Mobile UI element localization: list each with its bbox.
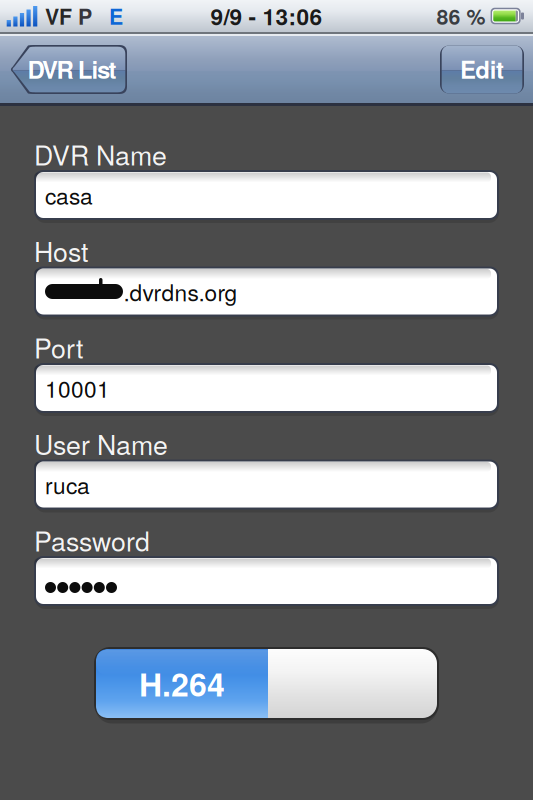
button[interactable]: DVR List	[11, 45, 127, 94]
staticText: casa	[45, 179, 93, 211]
staticText: E	[109, 1, 123, 31]
staticText: 86 %	[437, 1, 486, 31]
staticText: DVR Name	[34, 135, 167, 173]
staticText: H.264	[139, 661, 225, 706]
staticText: VF	[45, 1, 72, 31]
staticText: 9/9 - 13:06	[210, 0, 322, 32]
staticText: Port	[34, 328, 83, 366]
staticText: P	[78, 1, 92, 31]
button[interactable]: Edit	[440, 45, 524, 93]
staticText: .dvrdns.org	[123, 275, 237, 308]
staticText: DVR List	[27, 52, 117, 86]
button[interactable]: H.264	[94, 647, 439, 720]
staticText: Edit	[460, 52, 504, 86]
staticText: User Name	[34, 424, 168, 463]
staticText: 10001	[45, 372, 110, 404]
staticText: Password	[34, 521, 150, 559]
staticText: Host	[34, 231, 88, 270]
staticText: ruca	[45, 468, 90, 501]
